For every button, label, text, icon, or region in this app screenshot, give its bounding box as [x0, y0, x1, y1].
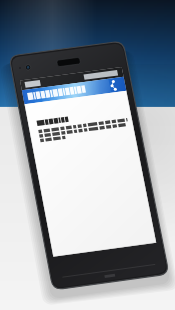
button[interactable]: Share	[112, 60, 128, 74]
button[interactable]	[26, 95, 126, 140]
button[interactable]	[18, 62, 113, 78]
